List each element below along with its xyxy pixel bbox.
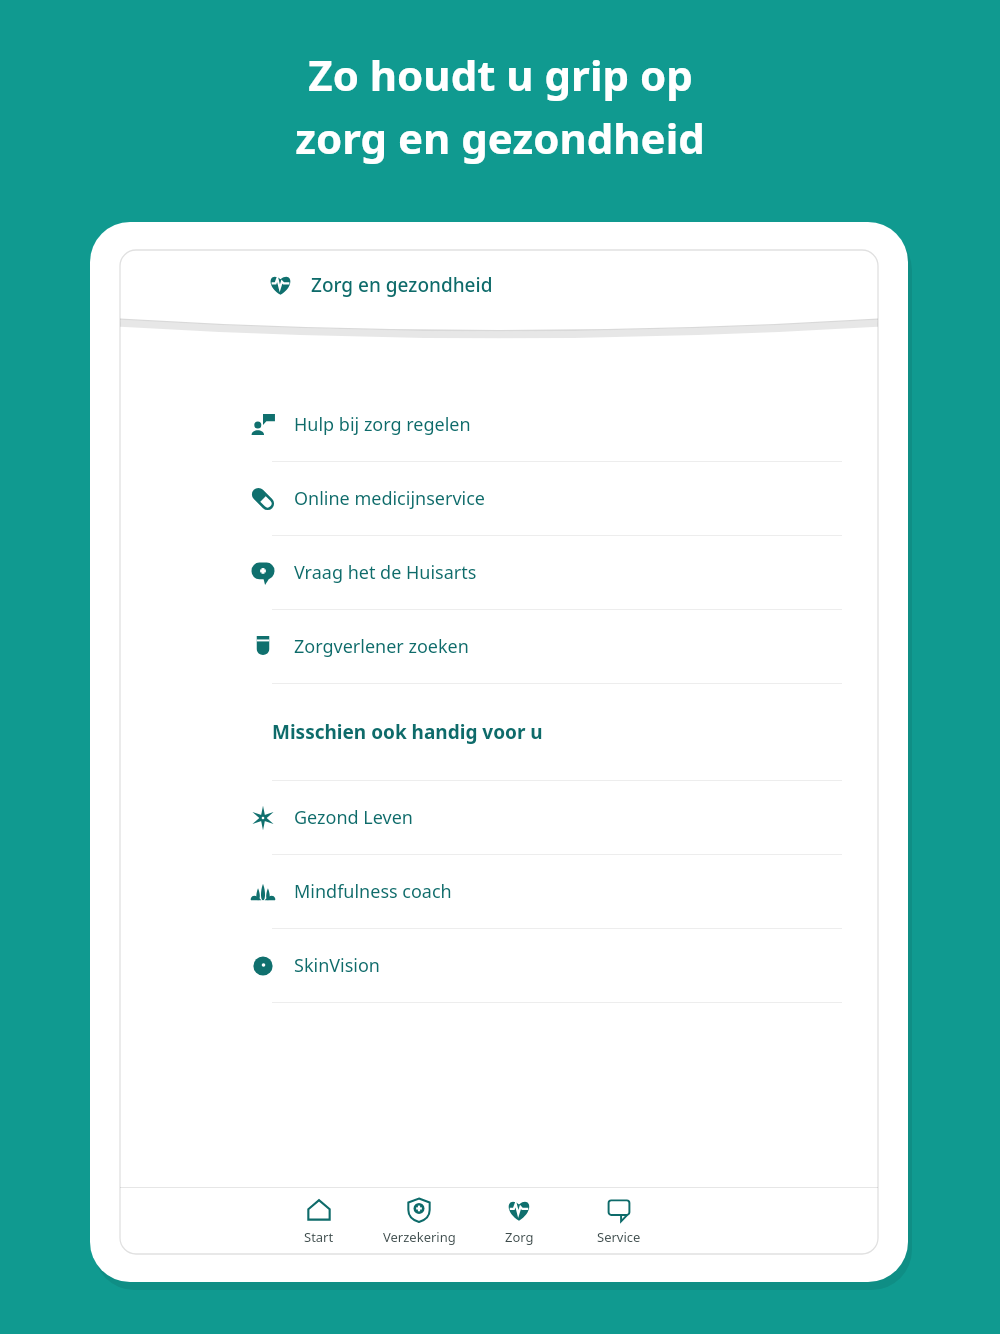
staticText: Verzekering	[383, 1228, 456, 1246]
staticText: SkinVision	[294, 953, 380, 978]
staticText: Zorg	[505, 1228, 534, 1246]
staticText: Zorgverlener zoeken	[294, 634, 469, 659]
button[interactable]: Start	[269, 1197, 369, 1246]
staticText: Gezond Leven	[294, 805, 413, 830]
button[interactable]: Online medicijnservice	[120, 462, 878, 535]
button[interactable]: Service	[569, 1197, 669, 1246]
button[interactable]: SkinVision	[120, 929, 878, 1002]
staticText: Online medicijnservice	[294, 486, 485, 511]
staticText: Start	[304, 1228, 334, 1246]
button[interactable]: Zorgverlener zoeken	[120, 610, 878, 683]
button[interactable]: Mindfulness coach	[120, 855, 878, 928]
button[interactable]: Gezond Leven	[120, 781, 878, 854]
button[interactable]: Zorg	[469, 1197, 569, 1246]
button[interactable]: Verzekering	[369, 1197, 469, 1246]
staticText: Service	[597, 1228, 641, 1246]
staticText: Zo houdt u grip op	[308, 46, 693, 103]
staticText: Hulp bij zorg regelen	[294, 412, 471, 437]
staticText: Zorg en gezondheid	[311, 272, 493, 298]
button[interactable]: Hulp bij zorg regelen	[120, 388, 878, 461]
button[interactable]: Vraag het de Huisarts	[120, 536, 878, 609]
staticText: Mindfulness coach	[294, 879, 452, 904]
staticText: zorg en gezondheid	[295, 109, 705, 166]
staticText: Misschien ook handig voor u	[272, 719, 543, 745]
staticText: Vraag het de Huisarts	[294, 560, 477, 585]
